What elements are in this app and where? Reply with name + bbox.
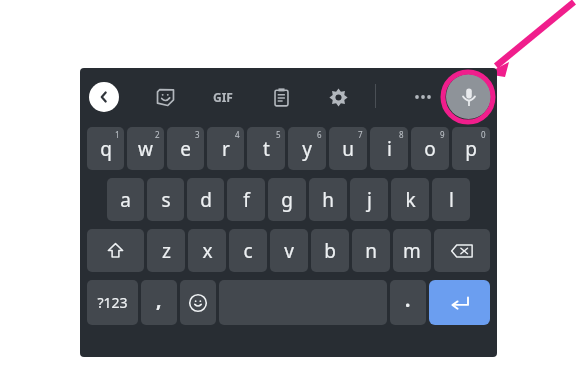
button[interactable]: k [391,178,429,221]
button[interactable]: z [147,229,185,272]
staticText: m [403,238,421,264]
button[interactable]: u [329,127,367,170]
staticText: 2 [155,129,160,140]
button[interactable]: s [147,178,184,221]
button[interactable]: j [350,178,388,221]
staticText: 3 [195,129,200,140]
button[interactable]: w [127,127,164,170]
staticText: ?123 [97,293,128,312]
staticText: 0 [481,129,486,140]
button[interactable]: Voice input [446,74,491,119]
button[interactable]: Back [89,82,119,112]
staticText: 7 [358,129,363,140]
staticText: , [156,287,162,313]
button[interactable]: x [188,229,226,272]
staticText: t [263,136,270,162]
button[interactable]: Enter [429,280,490,325]
staticText: . [405,287,411,313]
staticText: g [281,187,293,213]
button[interactable]: h [309,178,347,221]
button[interactable]: Backspace [434,229,490,272]
button[interactable]: i [370,127,408,170]
staticText: s [161,187,171,213]
staticText: w [138,136,153,162]
button[interactable]: v [270,229,308,272]
staticText: v [284,238,294,264]
button[interactable]: a [107,178,144,221]
button[interactable]: m [393,229,431,272]
staticText: l [449,187,454,213]
button[interactable]: t [247,127,285,170]
button[interactable]: ?123 [87,280,138,325]
button[interactable]: d [187,178,224,221]
staticText: r [222,136,230,162]
staticText: c [243,238,253,264]
button[interactable]: b [311,229,349,272]
staticText: 4 [235,129,240,140]
staticText: 1 [115,129,120,140]
staticText: o [424,136,436,162]
button[interactable]: g [268,178,306,221]
staticText: h [322,187,334,213]
staticText: y [302,136,312,162]
staticText: i [387,136,392,162]
button[interactable]: GIF [208,82,238,112]
button[interactable]: y [288,127,326,170]
staticText: k [405,187,416,213]
staticText: 8 [399,129,404,140]
button[interactable]: Shift [87,229,144,272]
button[interactable]: . [390,280,426,325]
button[interactable]: n [352,229,390,272]
button[interactable]: Stickers [150,82,180,112]
button[interactable]: r [207,127,244,170]
staticText: z [162,238,171,264]
staticText: q [100,136,112,162]
staticText: j [367,187,372,213]
staticText: b [324,238,336,264]
staticText: d [200,187,212,213]
staticText: u [342,136,354,162]
button[interactable]: l [432,178,470,221]
button[interactable]: Clipboard [266,82,296,112]
button[interactable]: Emoji [180,280,216,325]
staticText: p [465,136,477,162]
staticText: x [202,238,213,264]
button[interactable]: p [452,127,490,170]
button[interactable]: Settings [323,82,353,112]
staticText: e [180,136,191,162]
staticText: 9 [440,129,445,140]
staticText: f [243,187,250,213]
staticText: n [365,238,377,264]
button[interactable]: , [141,280,177,325]
button[interactable]: q [87,127,124,170]
button[interactable]: f [227,178,265,221]
button[interactable]: o [411,127,449,170]
button[interactable]: e [167,127,204,170]
staticText: GIF [213,89,233,105]
staticText: 5 [276,129,281,140]
staticText: a [120,187,131,213]
staticText: 6 [317,129,322,140]
button[interactable]: More options [402,82,444,112]
button[interactable]: c [229,229,267,272]
